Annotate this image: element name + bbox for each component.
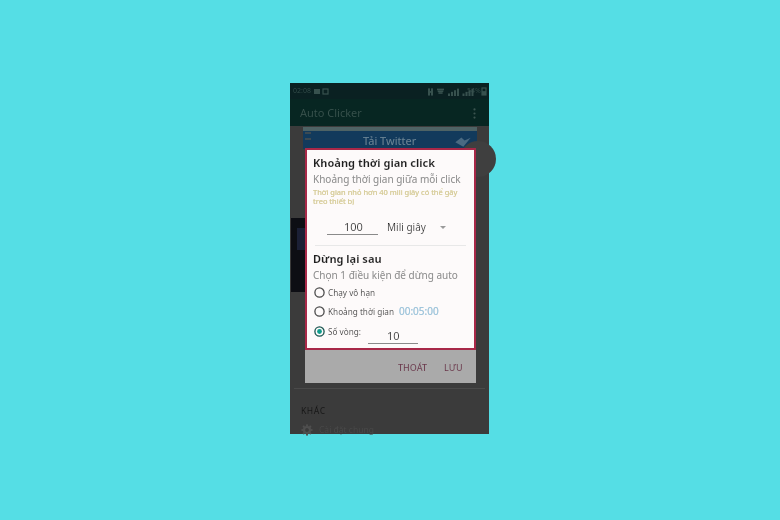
button[interactable]: Số vòng: — [307, 326, 474, 337]
staticText: Tải Twitter — [363, 133, 417, 148]
staticText: 54% — [467, 86, 481, 96]
button[interactable]: LƯU — [439, 357, 468, 377]
staticText: 00:05:00 — [399, 304, 439, 318]
staticText: 10 — [387, 328, 400, 343]
staticText: Cài đặt chung — [319, 424, 374, 436]
staticText: THOÁT — [398, 361, 427, 373]
staticText: Chọn 1 điều kiện để dừng auto — [313, 268, 458, 282]
button[interactable]: Tải Twitter — [303, 131, 477, 149]
staticText: LƯU — [444, 361, 463, 373]
button[interactable]: Cài đặt chung — [290, 424, 489, 436]
staticText: Dừng lại sau — [313, 251, 382, 266]
staticText: Khoảng thời gian giữa mỗi click — [313, 172, 461, 186]
staticText: Chạy vô hạn — [328, 287, 376, 298]
staticText: Auto Clicker — [300, 105, 362, 120]
staticText: Mili giây — [387, 220, 426, 234]
staticText: 100 — [344, 219, 363, 234]
staticText: Khoảng thời gian click — [313, 155, 436, 170]
staticText: 02:08 — [293, 86, 311, 96]
button[interactable]: More options — [463, 102, 485, 124]
staticText: KHÁC — [301, 405, 326, 417]
button[interactable]: Chạy vô hạn — [307, 286, 474, 299]
button[interactable]: THOÁT — [393, 357, 432, 377]
staticText: Thời gian nhỏ hơn 40 mili giây có thể gâ… — [313, 187, 467, 207]
button[interactable]: Khoảng thời gian — [307, 303, 474, 319]
staticText: Khoảng thời gian — [328, 306, 394, 317]
staticText: Số vòng: — [328, 326, 361, 337]
